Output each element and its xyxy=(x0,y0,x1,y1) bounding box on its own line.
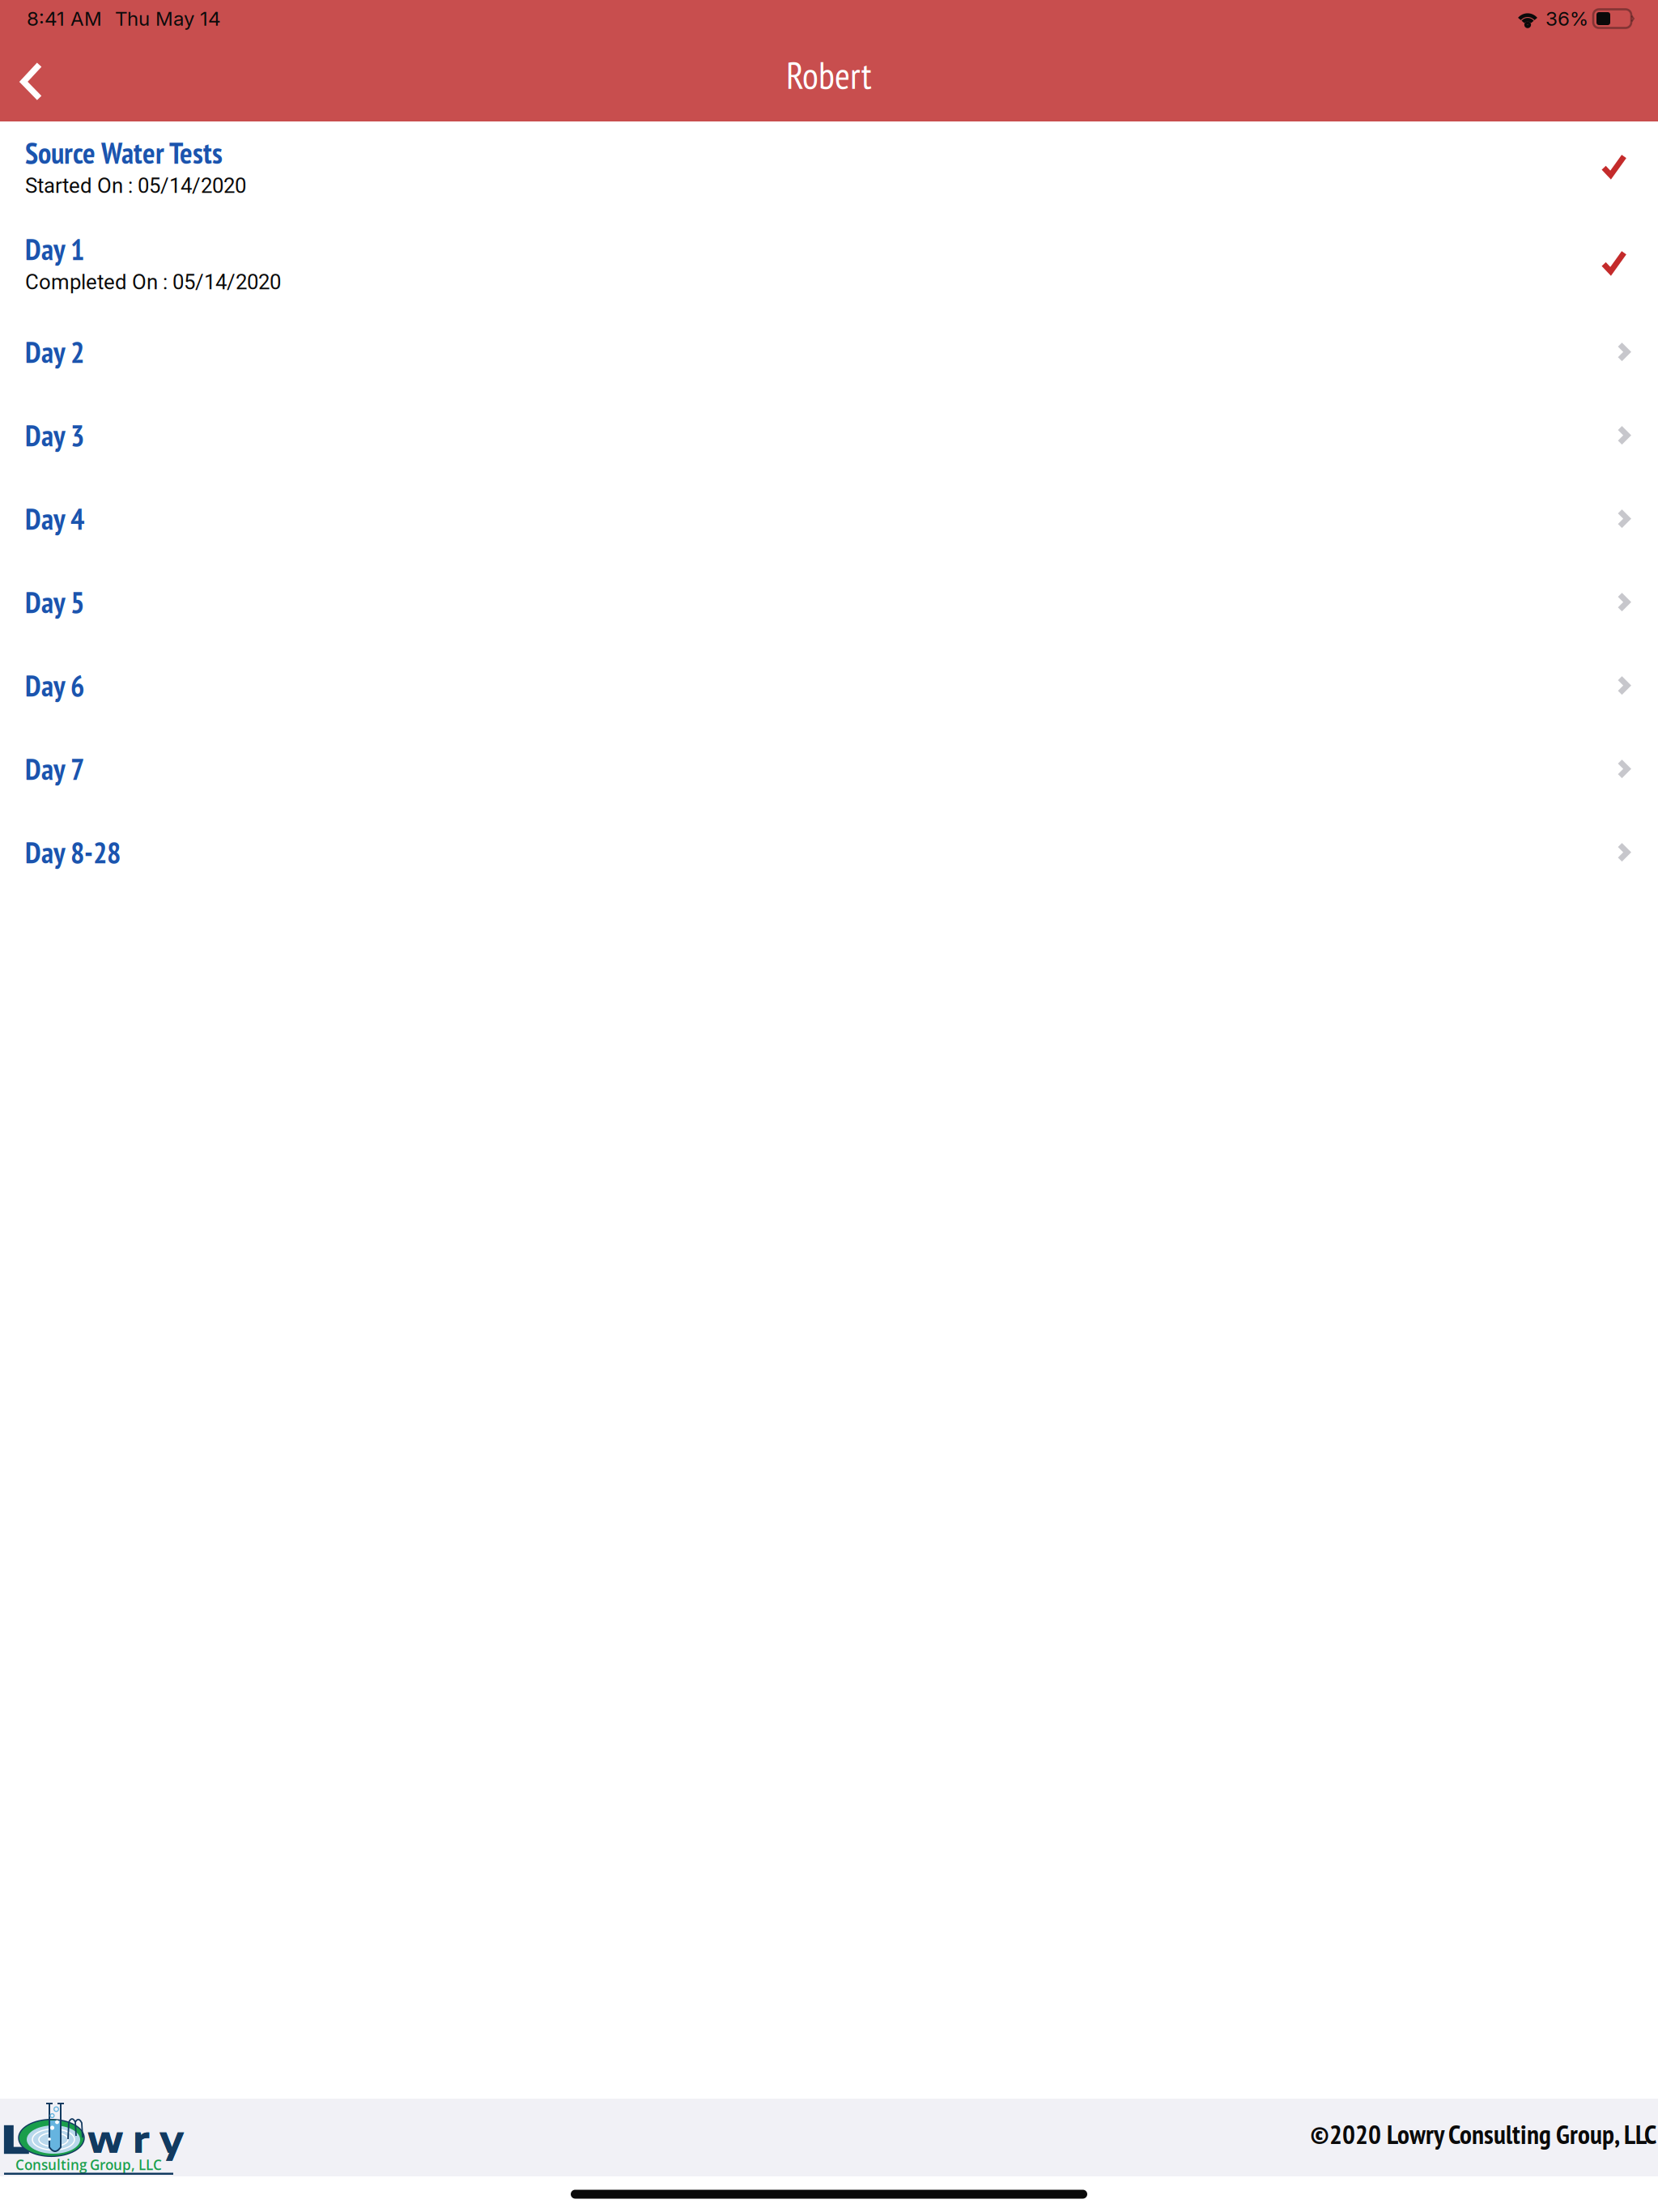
button[interactable]: Day 7 xyxy=(0,731,1658,815)
staticText: Source Water Tests xyxy=(25,134,223,172)
button[interactable]: Day 1 xyxy=(0,218,1658,314)
staticText: 8:41 AM xyxy=(27,7,102,31)
staticText: Day 7 xyxy=(25,750,84,788)
button[interactable]: Source Water Tests xyxy=(0,121,1658,218)
staticText: ©2020 Lowry Consulting Group, LLC xyxy=(1310,2116,1656,2151)
button[interactable]: Day 6 xyxy=(0,648,1658,731)
staticText: Day 6 xyxy=(25,666,84,705)
button[interactable]: Day 2 xyxy=(0,314,1658,398)
staticText: Day 8-28 xyxy=(25,833,121,871)
staticText: 36% xyxy=(1545,7,1588,31)
staticText: Robert xyxy=(786,51,872,99)
staticText: Started On : 05/14/2020 xyxy=(25,174,246,198)
staticText: Day 3 xyxy=(25,416,84,454)
button[interactable]: Day 4 xyxy=(0,481,1658,564)
staticText: Day 4 xyxy=(25,500,84,538)
staticText: Consulting Group, LLC xyxy=(15,2155,162,2174)
button[interactable]: Back xyxy=(0,40,66,119)
staticText: Thu May 14 xyxy=(115,7,221,31)
staticText: Completed On : 05/14/2020 xyxy=(25,270,281,294)
button[interactable]: Day 3 xyxy=(0,398,1658,481)
staticText: Day 1 xyxy=(25,230,84,268)
staticText: wry xyxy=(87,2115,184,2161)
button[interactable]: Day 5 xyxy=(0,564,1658,648)
button[interactable]: Day 8-28 xyxy=(0,815,1658,898)
staticText: Day 5 xyxy=(25,583,84,621)
staticText: Day 2 xyxy=(25,333,84,371)
staticText: wry xyxy=(87,2115,184,2161)
